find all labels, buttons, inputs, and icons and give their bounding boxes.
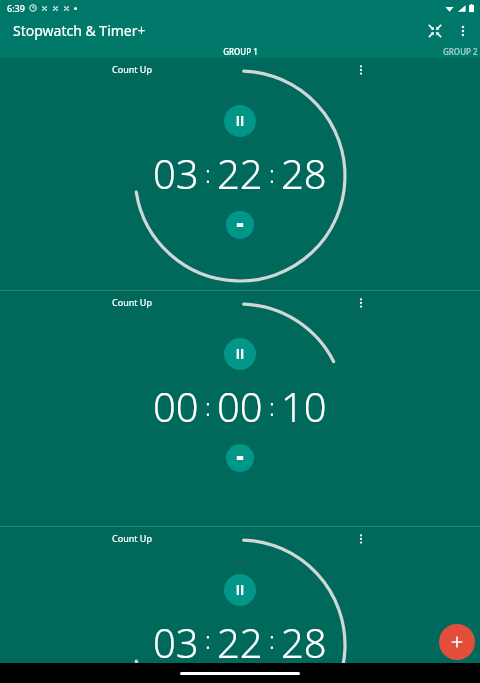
button[interactable]: Count Up — [0, 58, 480, 290]
button[interactable]: Add timer — [439, 624, 475, 660]
staticText: Count Up — [112, 296, 152, 308]
button[interactable]: Timer options — [350, 59, 372, 81]
staticText: 03 — [153, 146, 199, 200]
staticText: Stopwatch & Timer+ — [13, 21, 146, 40]
staticText: GROUP 2 — [443, 46, 478, 57]
button[interactable]: Count Up — [0, 527, 480, 664]
button[interactable]: GROUP 1 — [223, 46, 258, 57]
staticText: 22 — [217, 615, 263, 664]
staticText: : — [269, 623, 275, 656]
button[interactable]: Collapse — [420, 16, 450, 45]
button[interactable]: Pause — [224, 105, 256, 137]
button[interactable]: Stop — [226, 211, 254, 239]
staticText: Count Up — [112, 63, 152, 75]
staticText: 00 — [153, 379, 199, 433]
staticText: : — [205, 623, 211, 656]
staticText: 03 — [153, 615, 199, 664]
button[interactable]: Pause — [224, 574, 256, 606]
staticText: 6:39 — [7, 2, 25, 14]
staticText: 00 — [217, 379, 263, 433]
staticText: : — [205, 390, 211, 423]
button[interactable]: Timer options — [350, 528, 372, 550]
staticText: : — [269, 157, 275, 190]
button[interactable]: Stop — [226, 444, 254, 472]
staticText: : — [205, 157, 211, 190]
staticText: 22 — [217, 146, 263, 200]
button[interactable]: More options — [450, 16, 476, 45]
button[interactable]: GROUP 2 — [443, 46, 478, 57]
staticText: 10 — [281, 379, 327, 433]
staticText: 28 — [281, 615, 327, 664]
button[interactable]: Timer options — [350, 292, 372, 314]
button[interactable]: Pause — [224, 338, 256, 370]
staticText: 28 — [281, 146, 327, 200]
staticText: Count Up — [112, 532, 152, 544]
staticText: GROUP 1 — [223, 46, 258, 57]
staticText: : — [269, 390, 275, 423]
button[interactable]: Count Up — [0, 291, 480, 526]
